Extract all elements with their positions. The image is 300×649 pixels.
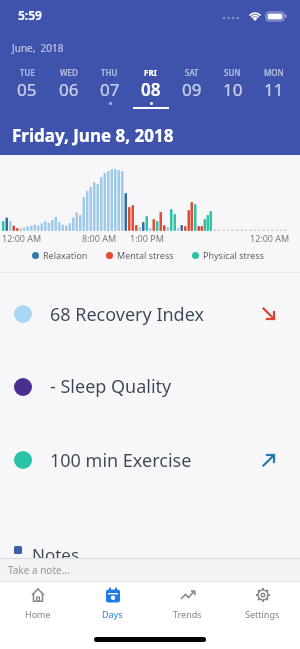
staticText: 05 [17, 78, 37, 101]
staticText: 09 [182, 78, 202, 101]
button[interactable]: Settings [225, 586, 300, 620]
button[interactable]: MON [253, 67, 294, 109]
staticText: 12:00 AM [2, 232, 42, 244]
staticText: Friday, June 8, 2018 [12, 124, 174, 147]
staticText: 07 [100, 78, 120, 101]
staticText: Days [102, 608, 123, 620]
staticText: THU [101, 67, 118, 78]
button[interactable]: TUE [6, 67, 48, 109]
staticText: TUE [20, 67, 35, 78]
button[interactable]: 100 min Exercise [0, 423, 300, 497]
button[interactable]: SUN [212, 67, 253, 109]
staticText: 10 [223, 78, 243, 101]
staticText: WED [60, 67, 78, 78]
button[interactable]: 68 Recovery Index [0, 278, 300, 350]
staticText: Relaxation [43, 249, 88, 261]
button[interactable]: - Sleep Quality [0, 350, 300, 423]
button[interactable]: SAT [171, 67, 212, 109]
staticText: SUN [224, 67, 241, 78]
staticText: Home [25, 608, 51, 620]
staticText: - Sleep Quality [50, 374, 172, 399]
button[interactable]: Trends [150, 586, 225, 620]
staticText: 8:00 AM [82, 232, 117, 244]
staticText: Take a note... [8, 563, 70, 577]
staticText: 11 [264, 78, 284, 101]
staticText: SAT [185, 67, 199, 78]
staticText: 100 min Exercise [50, 448, 192, 473]
button[interactable]: Days [75, 586, 150, 620]
staticText: 5:59 [18, 7, 42, 23]
staticText: Trends [173, 608, 202, 620]
staticText: 06 [59, 78, 79, 101]
button[interactable]: Take a note... [0, 558, 300, 581]
staticText: MON [264, 67, 284, 78]
button[interactable]: WED [48, 67, 89, 109]
staticText: 68 Recovery Index [50, 302, 204, 327]
staticText: Notes [32, 543, 80, 558]
button[interactable]: THU [89, 67, 130, 109]
staticText: Settings [245, 608, 280, 620]
staticText: 08 [141, 78, 161, 101]
staticText: 12:00 AM [250, 232, 290, 244]
button[interactable]: FRI [130, 67, 171, 109]
staticText: June, 2018 [12, 41, 64, 55]
button[interactable]: Home [0, 586, 75, 620]
staticText: 1:00 PM [130, 232, 164, 244]
staticText: Physical stress [203, 249, 265, 261]
staticText: Mental stress [117, 249, 174, 261]
staticText: FRI [144, 67, 157, 78]
